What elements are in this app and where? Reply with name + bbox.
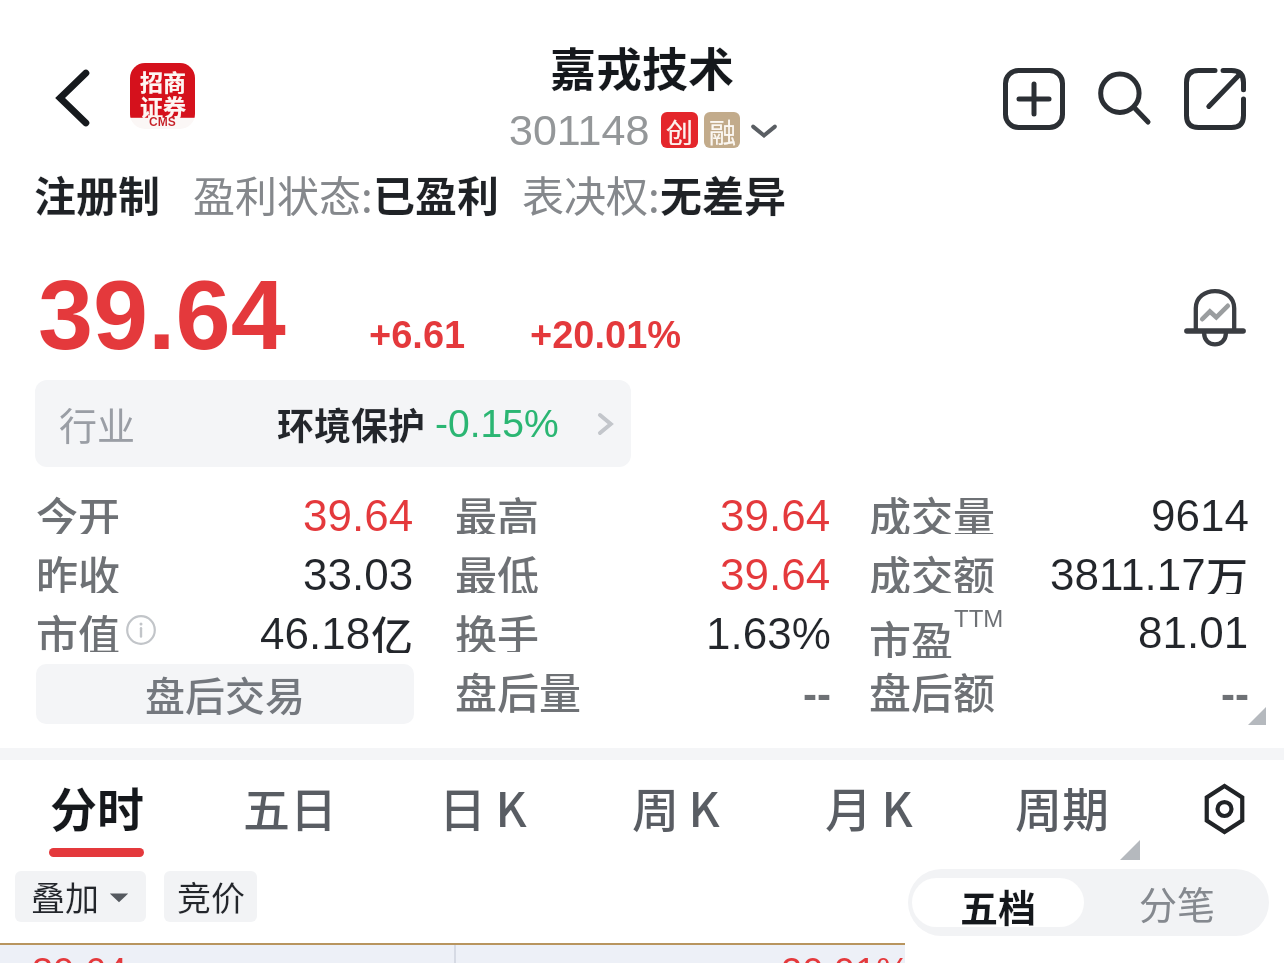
staticText: 万	[1206, 544, 1249, 594]
staticText: 39.64	[720, 491, 831, 540]
button[interactable]: Chart settings	[1186, 771, 1262, 847]
staticText: +6.61	[369, 314, 466, 356]
staticText: 招商	[140, 64, 186, 97]
staticText: 证券	[140, 89, 186, 122]
staticText: 叠加	[31, 872, 99, 921]
staticText: 39.64	[303, 491, 414, 540]
button[interactable]: Share	[1178, 62, 1252, 136]
staticText: 33.03	[303, 550, 414, 599]
staticText: --	[803, 671, 831, 718]
button[interactable]: 分时	[0, 763, 193, 863]
staticText: 亿	[371, 603, 414, 653]
staticText: 创	[666, 112, 693, 148]
staticText: 最低	[455, 543, 540, 593]
button[interactable]: 五日	[193, 763, 386, 863]
staticText: 周期	[1015, 772, 1109, 840]
staticText: 换手	[455, 602, 540, 652]
staticText: 46.18	[260, 609, 371, 658]
staticText: 嘉戎技术	[550, 33, 734, 100]
staticText: 分时	[50, 772, 144, 840]
staticText: 环境保护	[277, 397, 425, 451]
staticText: 无差异	[660, 163, 787, 224]
staticText: 行业	[59, 396, 136, 451]
staticText: 39.64	[38, 259, 286, 370]
staticText: 表决权:	[522, 163, 660, 224]
button[interactable]: 竞价	[164, 871, 257, 922]
staticText: 1.63%	[706, 609, 831, 658]
staticText: 分笔	[1139, 875, 1216, 930]
staticText: 成交额	[869, 543, 996, 593]
staticText: 已盈利	[373, 163, 500, 224]
staticText: 月 K	[825, 772, 913, 840]
button[interactable]: 日 K	[386, 763, 579, 863]
staticText: 注册制	[34, 163, 161, 224]
staticText: 今开	[36, 484, 121, 534]
staticText: 盘后量	[455, 660, 582, 720]
staticText: 日 K	[439, 772, 527, 840]
button[interactable]: 分笔	[1088, 869, 1266, 936]
staticText: 盘后额	[869, 660, 996, 720]
staticText: 39.64	[32, 951, 128, 963]
button[interactable]: 五档	[912, 878, 1084, 927]
staticText: CMS	[149, 115, 176, 128]
staticText: 3811.17	[1050, 550, 1206, 599]
button[interactable]: Back	[37, 62, 109, 134]
staticText: 昨收	[36, 543, 121, 593]
staticText: 五档	[960, 878, 1037, 927]
staticText: 最高	[455, 484, 540, 534]
staticText: -0.15%	[435, 402, 559, 446]
button[interactable]: 行业	[35, 380, 631, 467]
button[interactable]: 周 K	[579, 763, 772, 863]
button[interactable]: 盘后交易	[36, 664, 414, 724]
staticText: 39.64	[720, 550, 831, 599]
staticText: 五日	[243, 772, 337, 840]
staticText: +20.01%	[530, 314, 682, 356]
button[interactable]: 周期	[965, 763, 1158, 863]
staticText: --	[1221, 671, 1249, 718]
staticText: 周 K	[632, 772, 720, 840]
button[interactable]: Search	[1088, 62, 1162, 136]
button[interactable]: 月 K	[772, 763, 965, 863]
staticText: 融	[709, 112, 736, 148]
staticText: 市值	[36, 602, 121, 652]
staticText: 301148	[509, 106, 650, 154]
staticText: 成交量	[869, 484, 996, 534]
staticText: 盘后交易	[145, 665, 305, 723]
button[interactable]: 招商	[130, 63, 195, 129]
staticText: 81.01	[1138, 608, 1249, 657]
staticText: 20.01%	[781, 951, 910, 963]
staticText: 市盈	[869, 608, 954, 658]
staticText: 9614	[1151, 491, 1249, 540]
staticText: 盈利状态:	[193, 163, 373, 224]
button[interactable]: Add to watchlist	[997, 62, 1071, 136]
staticText: 竞价	[177, 872, 245, 921]
button[interactable]: Price alert	[1173, 274, 1257, 358]
button[interactable]: 叠加	[15, 871, 146, 922]
staticText: TTM	[954, 605, 1004, 632]
